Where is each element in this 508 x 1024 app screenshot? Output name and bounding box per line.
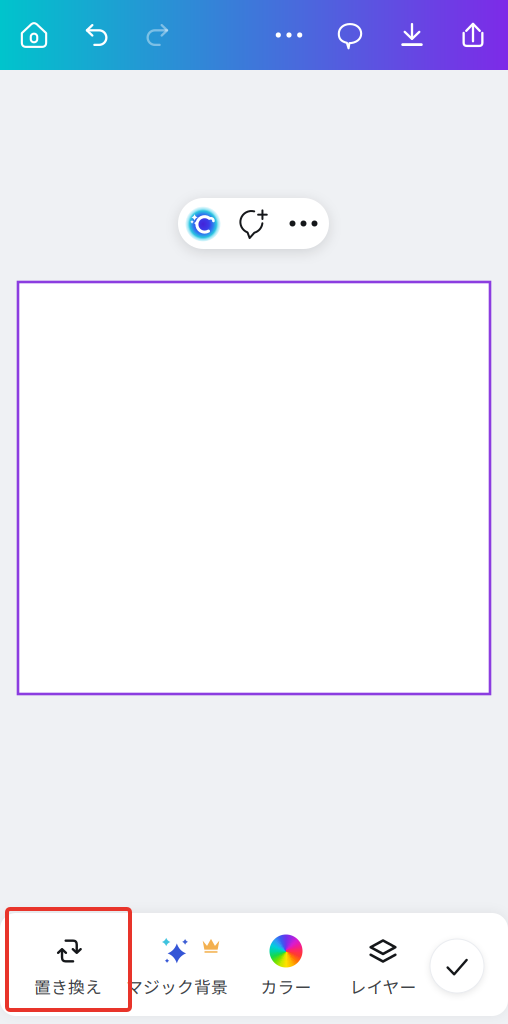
button[interactable]: Undo xyxy=(74,8,120,62)
button[interactable]: More options xyxy=(278,198,329,249)
button[interactable]: Done xyxy=(424,933,490,999)
button[interactable]: レイヤー xyxy=(335,913,431,1009)
button[interactable]: Share xyxy=(450,8,496,62)
button[interactable]: カラー xyxy=(238,913,334,1009)
staticText: レイヤー xyxy=(349,974,416,998)
button[interactable]: More xyxy=(266,8,312,62)
button[interactable]: Magic Studio xyxy=(178,198,228,249)
button[interactable]: Download xyxy=(389,8,435,62)
staticText: カラー xyxy=(260,974,311,998)
button[interactable]: Comments xyxy=(327,8,373,62)
button[interactable]: Home xyxy=(11,8,57,62)
button[interactable]: Redo xyxy=(134,8,180,62)
button[interactable]: 置き換え xyxy=(8,913,128,1009)
button[interactable]: Add comment xyxy=(228,198,278,249)
staticText: マジック背景 xyxy=(126,974,228,998)
button[interactable]: マジック背景 xyxy=(122,913,232,1009)
staticText: 置き換え xyxy=(34,974,102,998)
